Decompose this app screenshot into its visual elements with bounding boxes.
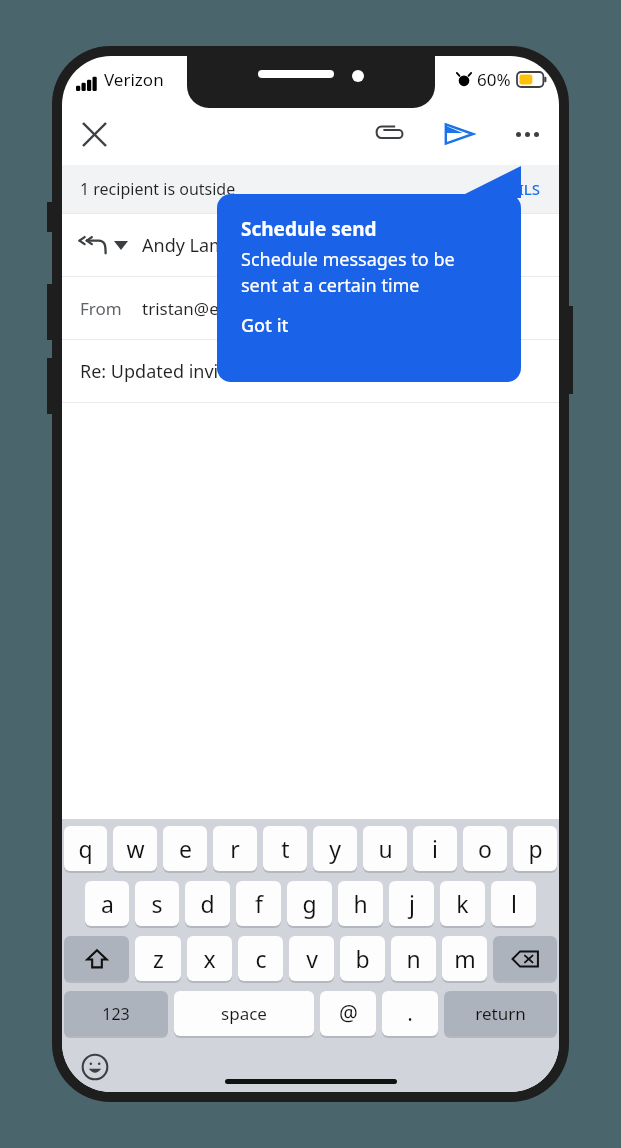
button[interactable]: p — [513, 826, 557, 871]
button[interactable]: w — [113, 826, 157, 871]
staticText: 1 recipient is outside — [80, 178, 236, 200]
button[interactable]: Shift — [64, 936, 129, 981]
staticText: l — [511, 888, 517, 919]
staticText: DETAILS — [482, 179, 541, 199]
staticText: From — [80, 297, 122, 320]
button[interactable]: y — [313, 826, 357, 871]
staticText: f — [255, 888, 263, 919]
button[interactable]: x — [187, 936, 232, 981]
button[interactable]: Attach file — [365, 110, 413, 158]
staticText: x — [203, 943, 216, 974]
staticText: k — [456, 888, 469, 919]
button[interactable]: d — [185, 881, 230, 926]
button[interactable]: t — [263, 826, 307, 871]
button[interactable]: c — [238, 936, 283, 981]
button[interactable]: l — [491, 881, 536, 926]
staticText: space — [221, 1002, 267, 1025]
staticText: Schedule messages to be sent at a certai… — [241, 247, 455, 297]
button[interactable]: j — [389, 881, 434, 926]
staticText: Andy Lambert — [142, 233, 262, 258]
staticText: a — [101, 888, 114, 919]
staticText: u — [378, 833, 393, 864]
button[interactable]: . — [382, 991, 438, 1036]
button[interactable]: k — [440, 881, 485, 926]
button[interactable]: Backspace — [493, 936, 557, 981]
staticText: n — [406, 943, 421, 974]
staticText: i — [432, 833, 438, 864]
staticText: Got it — [241, 313, 289, 338]
staticText: @ — [339, 999, 358, 1028]
button[interactable]: m — [442, 936, 487, 981]
button[interactable]: space — [174, 991, 314, 1036]
staticText: s — [151, 888, 163, 919]
staticText: d — [200, 888, 215, 919]
staticText: return — [475, 1002, 526, 1025]
staticText: o — [478, 833, 492, 864]
button[interactable]: From — [62, 277, 559, 339]
staticText: tristan@example.com — [142, 297, 317, 320]
staticText: b — [355, 943, 370, 974]
staticText: r — [230, 833, 240, 864]
button[interactable]: 123 — [64, 991, 168, 1036]
button[interactable]: 1 recipient is outside — [62, 165, 559, 213]
staticText: t — [281, 833, 290, 864]
button[interactable]: v — [289, 936, 334, 981]
button[interactable]: g — [287, 881, 332, 926]
button[interactable]: z — [135, 936, 181, 981]
staticText: p — [528, 833, 543, 864]
button[interactable]: @ — [320, 991, 376, 1036]
staticText: y — [329, 833, 341, 864]
button[interactable]: Emoji — [78, 1050, 112, 1084]
staticText: g — [302, 888, 317, 919]
staticText: z — [153, 943, 164, 974]
button[interactable]: Send — [435, 110, 483, 158]
button[interactable]: e — [163, 826, 207, 871]
staticText: . — [407, 999, 413, 1028]
staticText: c — [255, 943, 267, 974]
staticText: 123 — [102, 1003, 130, 1025]
button[interactable]: b — [340, 936, 385, 981]
staticText: w — [126, 833, 145, 864]
button[interactable]: r — [213, 826, 257, 871]
staticText: q — [78, 833, 93, 864]
button[interactable]: n — [391, 936, 436, 981]
button[interactable]: s — [135, 881, 179, 926]
button[interactable]: Close — [70, 110, 118, 158]
staticText: j — [409, 888, 415, 919]
button[interactable]: h — [338, 881, 383, 926]
staticText: e — [179, 833, 192, 864]
staticText: 60% — [477, 68, 511, 91]
button[interactable]: o — [463, 826, 507, 871]
staticText: h — [353, 888, 368, 919]
button[interactable]: f — [236, 881, 281, 926]
button[interactable]: a — [85, 881, 129, 926]
staticText: Schedule send — [241, 216, 377, 242]
button[interactable]: u — [363, 826, 407, 871]
staticText: Re: Updated invitation with note: Winecu… — [80, 359, 458, 384]
staticText: m — [454, 943, 476, 974]
button[interactable]: Andy Lambert — [62, 214, 559, 276]
button[interactable]: More options — [503, 110, 551, 158]
staticText: Verizon — [104, 68, 164, 91]
button[interactable]: i — [413, 826, 457, 871]
staticText: v — [306, 943, 318, 974]
button[interactable]: Got it — [241, 313, 289, 338]
button[interactable]: Re: Updated invitation with note: Winecu… — [62, 340, 559, 402]
button[interactable]: q — [64, 826, 107, 871]
button[interactable]: return — [444, 991, 557, 1036]
